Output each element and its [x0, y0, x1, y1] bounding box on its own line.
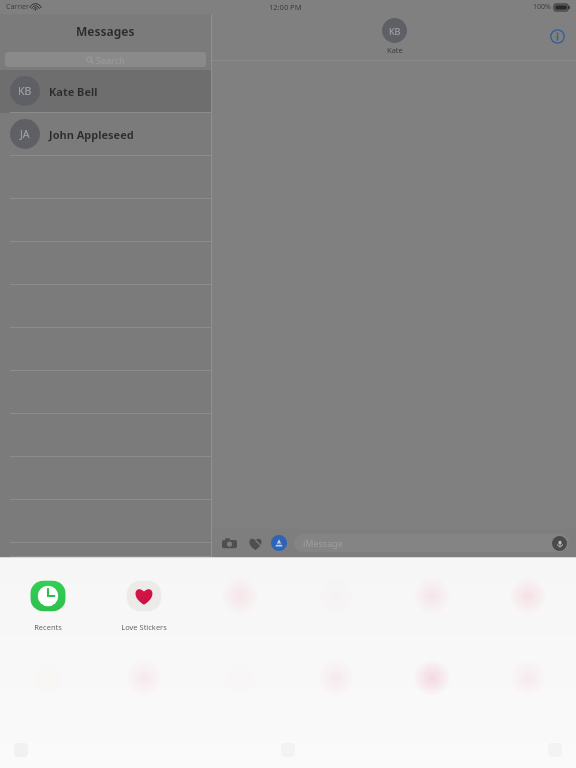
- staticText: KB: [18, 84, 32, 98]
- button[interactable]: iMessage Apps: [271, 535, 287, 551]
- button[interactable]: Recents: [0, 572, 96, 648]
- button[interactable]: iMessage: [294, 534, 569, 552]
- button[interactable]: Dictate: [552, 536, 567, 551]
- staticText: Love Stickers: [121, 622, 167, 632]
- staticText: Messages: [76, 23, 135, 39]
- button[interactable]: JA: [0, 113, 211, 156]
- staticText: KB: [389, 25, 401, 37]
- staticText: John Appleseed: [49, 127, 134, 142]
- staticText: Carrier: [6, 2, 29, 12]
- button[interactable]: Details: [547, 26, 567, 46]
- staticText: Recents: [34, 622, 62, 632]
- button[interactable]: Digital Touch: [245, 533, 265, 553]
- staticText: Kate: [387, 45, 403, 55]
- button[interactable]: KB: [0, 70, 211, 113]
- button[interactable]: Kate contact: [382, 18, 407, 55]
- staticText: JA: [20, 127, 30, 141]
- button[interactable]: Camera: [219, 533, 239, 553]
- staticText: 12:00 PM: [269, 2, 302, 12]
- button[interactable]: [0, 543, 211, 557]
- button[interactable]: Love Stickers: [96, 572, 192, 648]
- staticText: 100%: [533, 2, 551, 12]
- staticText: iMessage: [303, 537, 343, 549]
- staticText: Search: [96, 54, 125, 66]
- staticText: Kate Bell: [49, 84, 98, 99]
